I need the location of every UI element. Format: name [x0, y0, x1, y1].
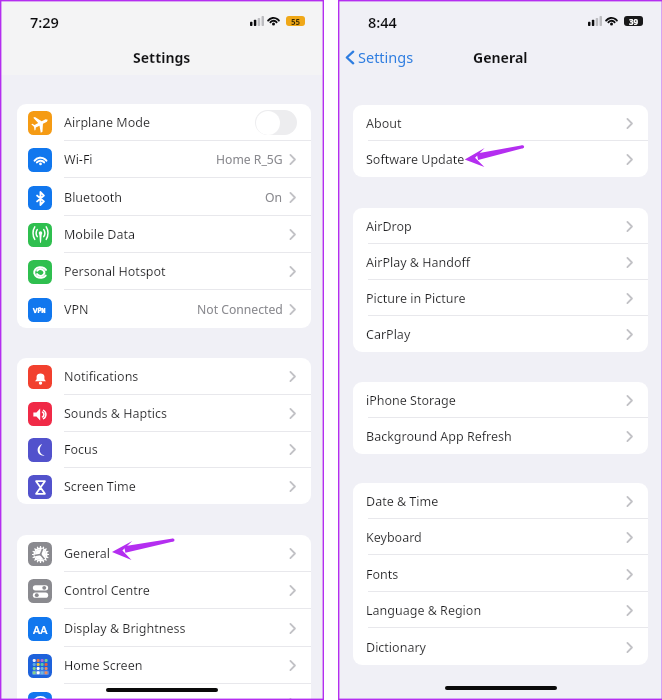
staticText: Keyboard	[366, 529, 422, 546]
button[interactable]: Focus	[17, 431, 311, 468]
staticText: Picture in Picture	[366, 290, 466, 307]
staticText: Background App Refresh	[366, 428, 512, 445]
staticText: CarPlay	[366, 326, 411, 343]
button[interactable]: Sounds & Haptics	[17, 395, 311, 432]
staticText: Settings	[358, 47, 414, 67]
staticText: Notifications	[64, 368, 139, 385]
staticText: Language & Region	[366, 602, 482, 619]
button[interactable]: Language & Region	[353, 592, 648, 628]
staticText: iPhone Storage	[366, 392, 456, 409]
button[interactable]: AirPlay & Handoff	[353, 244, 648, 280]
staticText: Display & Brightness	[64, 620, 186, 637]
button[interactable]: Date & Time	[353, 483, 648, 519]
button[interactable]: Airplane Mode toggle	[255, 110, 297, 135]
staticText: Settings	[133, 48, 191, 67]
staticText: AA	[33, 622, 48, 637]
button[interactable]: Background App Refresh	[353, 418, 648, 454]
button[interactable]: Mobile Data	[17, 216, 311, 253]
button[interactable]: Settings	[345, 47, 414, 67]
staticText: General	[64, 545, 111, 562]
button[interactable]: Airplane Mode	[17, 104, 311, 141]
staticText: 7:29	[30, 12, 59, 32]
staticText: 55	[291, 16, 301, 26]
staticText: Dictionary	[366, 639, 426, 656]
staticText: Screen Time	[64, 478, 136, 495]
staticText: About	[366, 115, 402, 132]
staticText: Wi-Fi	[64, 151, 93, 168]
button[interactable]: iPhone Storage	[353, 382, 648, 418]
staticText: AirDrop	[366, 218, 412, 235]
button[interactable]: CarPlay	[353, 316, 648, 352]
staticText: AirPlay & Handoff	[366, 254, 471, 271]
staticText: On	[265, 189, 283, 206]
button[interactable]: Picture in Picture	[353, 280, 648, 316]
button[interactable]: VPN	[17, 291, 311, 328]
button[interactable]: Control Centre	[17, 572, 311, 609]
staticText: 39	[629, 16, 639, 26]
button[interactable]: Dictionary	[353, 629, 648, 665]
button[interactable]: Software Update	[353, 141, 648, 177]
button[interactable]: About	[353, 105, 648, 141]
staticText: VPN	[64, 301, 89, 318]
staticText: Focus	[64, 441, 98, 458]
button[interactable]: Personal Hotspot	[17, 253, 311, 290]
button[interactable]: AirDrop	[353, 208, 648, 244]
staticText: Control Centre	[64, 582, 150, 599]
staticText: Sounds & Haptics	[64, 405, 167, 422]
button[interactable]: General	[17, 535, 311, 572]
button[interactable]: Home Screen	[17, 647, 311, 684]
button[interactable]: Screen Time	[17, 468, 311, 504]
staticText: Software Update	[366, 151, 465, 168]
button[interactable]: Notifications	[17, 358, 311, 395]
staticText: Home Screen	[64, 657, 143, 674]
staticText: Mobile Data	[64, 226, 136, 243]
button[interactable]: Wi-Fi	[17, 141, 311, 178]
staticText: Not Connected	[197, 301, 283, 318]
staticText: Home R_5G	[216, 151, 283, 168]
staticText: Date & Time	[366, 493, 439, 510]
staticText: 8:44	[368, 12, 397, 32]
staticText: Personal Hotspot	[64, 263, 166, 280]
button[interactable]: Fonts	[353, 556, 648, 592]
button[interactable]: Bluetooth	[17, 179, 311, 216]
staticText: Fonts	[366, 566, 399, 583]
staticText: General	[473, 48, 528, 67]
button[interactable]: Accessibility	[17, 685, 311, 700]
staticText: Airplane Mode	[64, 114, 150, 131]
button[interactable]: Display & Brightness	[17, 610, 311, 647]
staticText: Bluetooth	[64, 189, 123, 206]
button[interactable]: Keyboard	[353, 519, 648, 555]
